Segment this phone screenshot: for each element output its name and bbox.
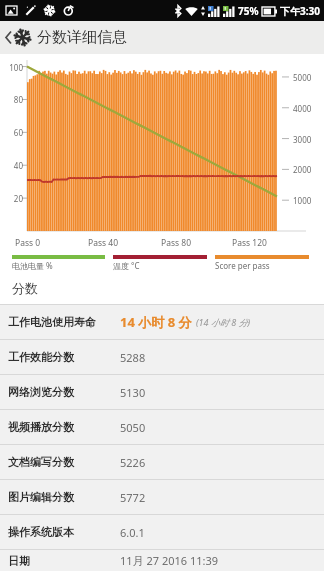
button[interactable]: 操作系统版本: [0, 515, 324, 549]
button[interactable]: 图片编辑分数: [0, 480, 324, 514]
staticText: 4000: [293, 103, 323, 114]
staticText: 40: [1, 160, 23, 171]
staticText: 网络浏览分数: [8, 385, 120, 399]
staticText: 11月 27 2016 11:39: [120, 553, 219, 568]
staticText: 图片编辑分数: [8, 490, 120, 504]
button[interactable]: 工作电池使用寿命: [0, 305, 324, 339]
staticText: 日期: [8, 554, 120, 568]
staticText: 2000: [293, 164, 323, 175]
button[interactable]: 视频播放分数: [0, 410, 324, 444]
staticText: 6.0.1: [120, 525, 145, 540]
staticText: 温度 °C: [113, 260, 140, 271]
staticText: 工作电池使用寿命: [8, 315, 120, 329]
staticText: 工作效能分数: [8, 350, 120, 364]
staticText: 1000: [293, 195, 323, 206]
button[interactable]: 文档编写分数: [0, 445, 324, 479]
staticText: 电池电量 %: [12, 260, 53, 271]
staticText: Pass 0: [15, 237, 41, 249]
staticText: 100: [1, 62, 23, 73]
button[interactable]: 日期: [0, 550, 324, 571]
staticText: 5130: [120, 385, 146, 400]
staticText: Pass 120: [232, 237, 267, 249]
staticText: 操作系统版本: [8, 525, 120, 539]
staticText: 视频播放分数: [8, 420, 120, 434]
staticText: 5288: [120, 350, 146, 365]
staticText: 5226: [120, 455, 146, 470]
staticText: 分数: [12, 280, 38, 296]
button[interactable]: 网络浏览分数: [0, 375, 324, 409]
staticText: 分数详细信息: [37, 28, 127, 47]
staticText: Score per pass: [215, 260, 270, 271]
staticText: 80: [1, 94, 23, 105]
staticText: 下午3:30: [280, 4, 320, 18]
staticText: (14 小时 8 分): [196, 316, 251, 328]
staticText: 3000: [293, 134, 323, 145]
other: Back: [4, 30, 13, 45]
staticText: Pass 80: [161, 237, 191, 249]
staticText: Pass 40: [88, 237, 118, 249]
staticText: 文档编写分数: [8, 455, 120, 469]
staticText: 5772: [120, 490, 146, 505]
staticText: 20: [1, 193, 23, 204]
staticText: 14 小时 8 分: [120, 313, 192, 331]
staticText: 5050: [120, 420, 146, 435]
staticText: 5000: [293, 72, 323, 83]
button[interactable]: 工作效能分数: [0, 340, 324, 374]
staticText: 60: [1, 127, 23, 138]
staticText: 75%: [238, 4, 259, 18]
button[interactable]: Back: [0, 21, 324, 54]
